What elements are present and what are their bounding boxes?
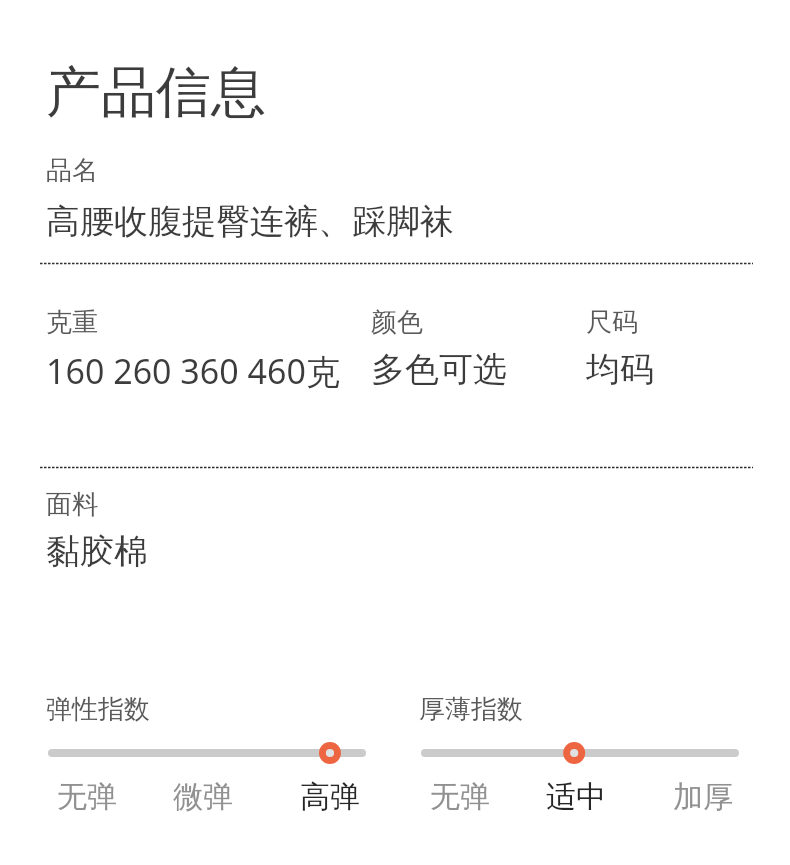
button[interactable]: 适中 [515, 778, 637, 816]
button[interactable]: 加厚 [642, 778, 764, 816]
staticText: 加厚 [673, 778, 733, 816]
staticText: 颜色 [371, 306, 423, 339]
staticText: 160 260 360 460克 [46, 348, 340, 394]
staticText: 尺码 [586, 306, 638, 339]
staticText: 克重 [46, 306, 98, 339]
button[interactable]: 高弹 [269, 778, 391, 816]
staticText: 弹性指数 [46, 693, 150, 726]
staticText: 多色可选 [371, 348, 507, 391]
staticText: 高腰收腹提臀连裤、踩脚袜 [46, 200, 454, 243]
staticText: 无弹 [57, 778, 117, 816]
staticText: 黏胶棉 [46, 530, 148, 573]
staticText: 品名 [46, 154, 98, 187]
staticText: 高弹 [300, 778, 360, 816]
staticText: 微弹 [173, 778, 233, 816]
staticText: 均码 [586, 348, 654, 391]
button[interactable]: 无弹 [399, 778, 520, 816]
staticText: 无弹 [430, 778, 490, 816]
staticText: 产品信息 [46, 58, 266, 127]
button[interactable]: 弹性指数 [46, 742, 364, 764]
button[interactable]: 微弹 [142, 778, 264, 816]
button[interactable]: 无弹 [26, 778, 147, 816]
staticText: 适中 [546, 778, 606, 816]
staticText: 厚薄指数 [419, 693, 523, 726]
button[interactable]: 厚薄指数 [419, 742, 737, 764]
staticText: 面料 [46, 488, 98, 521]
